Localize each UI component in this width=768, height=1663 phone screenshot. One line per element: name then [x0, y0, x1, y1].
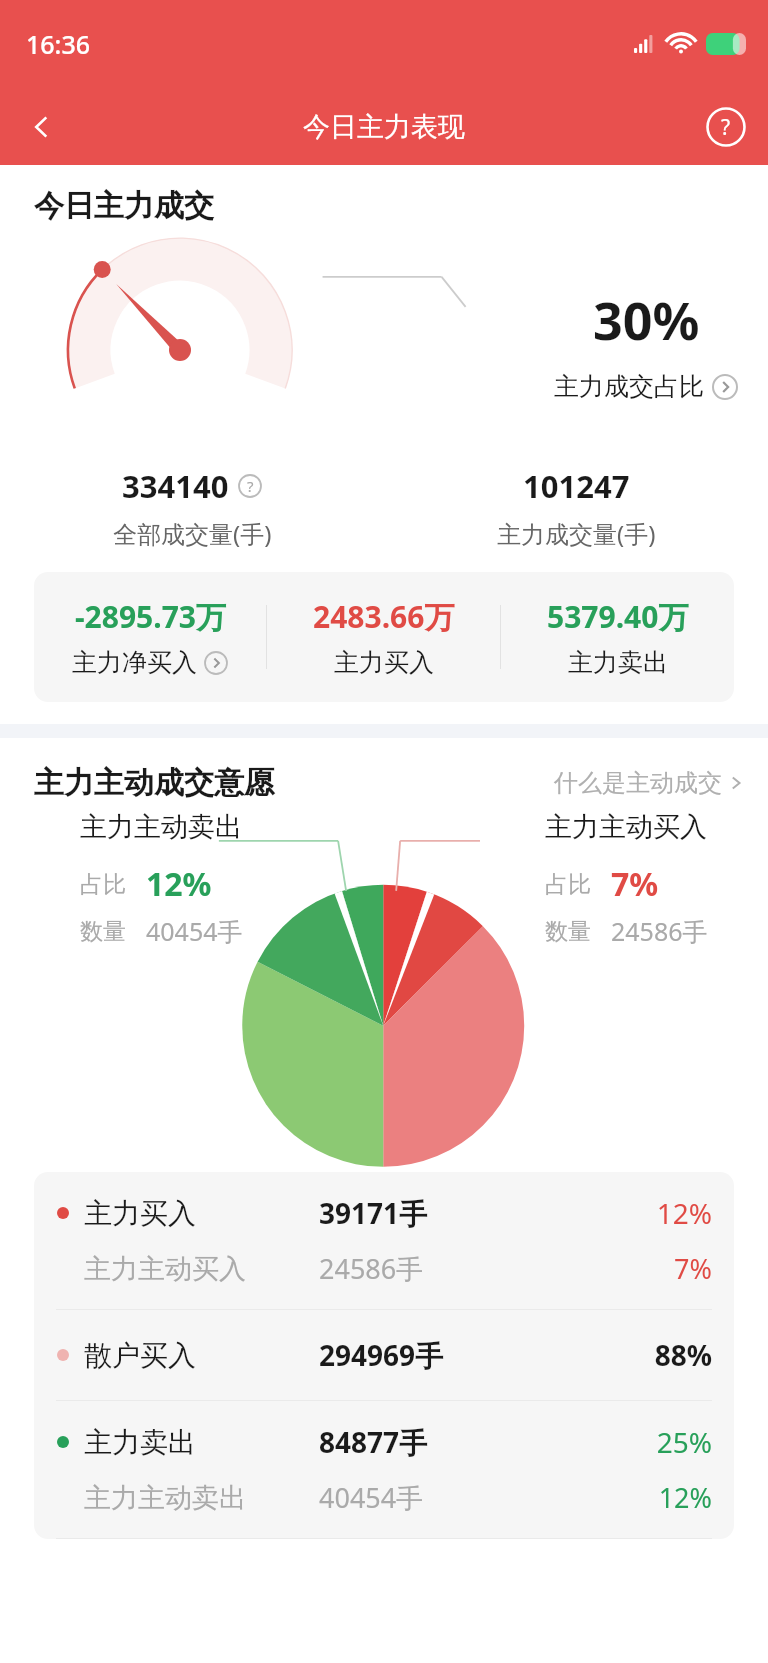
staticText: 84877手	[319, 1423, 566, 1461]
staticText: 88%	[566, 1336, 712, 1374]
staticText: 数量	[545, 917, 591, 946]
button[interactable]: Back	[14, 99, 70, 155]
button[interactable]: 散户买入	[56, 1310, 712, 1400]
button[interactable]: 什么是主动成交	[554, 768, 744, 798]
button[interactable]: Help	[698, 99, 754, 155]
staticText: 主力净买入	[72, 647, 197, 678]
staticText: 40454手	[319, 1479, 566, 1516]
staticText: 主力卖出	[568, 647, 668, 678]
staticText: ?	[721, 113, 731, 142]
staticText: 占比	[80, 870, 126, 899]
staticText: 30%	[593, 284, 700, 355]
staticText: 334140	[122, 465, 229, 507]
staticText: 24586手	[319, 1250, 566, 1287]
staticText: 16:36	[26, 27, 91, 61]
button[interactable]: 说明	[238, 474, 262, 498]
staticText: 主力买入	[84, 1196, 319, 1231]
staticText: 主力成交量(手)	[497, 517, 656, 550]
staticText: 7%	[611, 862, 659, 906]
staticText: 主力买入	[334, 647, 434, 678]
staticText: 101247	[523, 465, 630, 507]
staticText: 7%	[566, 1250, 712, 1287]
staticText: 2483.66万	[313, 596, 455, 637]
staticText: 24586手	[611, 914, 708, 948]
staticText: 全部成交量(手)	[113, 517, 272, 550]
staticText: 40454手	[146, 914, 243, 948]
staticText: 12%	[146, 862, 212, 906]
staticText: 主力主动卖出	[84, 1481, 319, 1515]
staticText: 数量	[80, 917, 126, 946]
staticText: 主力主动买入	[545, 810, 707, 844]
button[interactable]: 主力成交占比	[554, 371, 738, 402]
staticText: 占比	[545, 870, 591, 899]
staticText: 今日主力表现	[303, 110, 465, 144]
button[interactable]: 主力买入	[56, 1172, 712, 1309]
staticText: 今日主力成交	[34, 187, 214, 225]
staticText: 5379.40万	[547, 596, 689, 637]
staticText: 主力成交占比	[554, 371, 704, 402]
staticText: 主力主动成交意愿	[34, 764, 274, 802]
staticText: 12%	[566, 1194, 712, 1232]
staticText: 294969手	[319, 1336, 566, 1374]
staticText: 主力主动买入	[84, 1252, 319, 1286]
button[interactable]: 主力卖出	[56, 1401, 712, 1538]
staticText: 12%	[566, 1479, 712, 1516]
button[interactable]: -2895.73万	[34, 596, 266, 678]
staticText: 主力主动卖出	[80, 810, 242, 844]
staticText: -2895.73万	[75, 596, 226, 637]
staticText: 什么是主动成交	[554, 768, 722, 798]
staticText: 39171手	[319, 1194, 566, 1232]
staticText: 25%	[566, 1423, 712, 1461]
staticText: 散户买入	[84, 1338, 319, 1373]
staticText: ?	[247, 476, 254, 496]
staticText: 主力卖出	[84, 1425, 319, 1460]
